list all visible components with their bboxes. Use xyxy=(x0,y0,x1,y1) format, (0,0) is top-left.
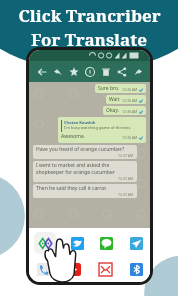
staticText: 12:37 AM xyxy=(118,192,134,197)
button[interactable]: Bluetooth xyxy=(127,260,145,278)
button[interactable]: Telegram xyxy=(127,234,145,252)
button[interactable]: YouTube xyxy=(65,260,83,278)
button[interactable]: Sure bro. xyxy=(98,85,143,92)
staticText: Then he said they call it carrot xyxy=(36,185,107,192)
button[interactable]: Transcriber xyxy=(34,232,56,254)
button[interactable]: Reply xyxy=(50,64,65,79)
staticText: Okay. xyxy=(106,107,120,114)
button[interactable]: Then he said they call it carrot xyxy=(36,185,134,197)
button[interactable]: Have you heard of orange cucumber? xyxy=(36,146,134,158)
button[interactable]: Mail xyxy=(96,260,114,278)
staticText: 12:36 AM xyxy=(122,135,138,140)
staticText: Sure bro. xyxy=(98,85,120,92)
staticText: Chetan Kaushik xyxy=(64,120,96,125)
staticText: I went to market and asked the shopkeepe… xyxy=(36,162,115,176)
button[interactable]: Call xyxy=(34,260,52,278)
staticText: 12:36 AM xyxy=(122,98,138,103)
button[interactable]: Delete xyxy=(98,64,113,79)
button[interactable]: Okay. xyxy=(106,107,143,114)
button[interactable]: Wait xyxy=(109,96,143,103)
button[interactable]: Star xyxy=(66,64,81,79)
staticText: 12:37 AM xyxy=(118,176,134,181)
button[interactable]: Share xyxy=(114,64,129,79)
button[interactable]: Twitter xyxy=(68,234,86,252)
staticText: 12:36 AM xyxy=(122,109,138,114)
button[interactable]: I went to market and asked the shopkeepe… xyxy=(36,162,134,181)
button[interactable]: Chetan Kaushik xyxy=(61,120,143,140)
staticText: Wait xyxy=(109,96,120,103)
staticText: Awesome. xyxy=(61,133,86,140)
staticText: For Translate xyxy=(31,28,147,51)
staticText: 12:37 AM xyxy=(118,153,134,158)
staticText: Have you heard of orange cucumber? xyxy=(36,146,125,153)
button[interactable]: Back xyxy=(34,64,49,79)
button[interactable]: Line xyxy=(97,234,115,252)
button[interactable]: Info xyxy=(82,64,97,79)
button[interactable]: Forward xyxy=(130,64,145,79)
staticText: 12:36 AM xyxy=(122,87,138,92)
staticText: I'm busy watching game of thrones. xyxy=(64,125,132,130)
staticText: Click Trancriber xyxy=(18,4,161,27)
